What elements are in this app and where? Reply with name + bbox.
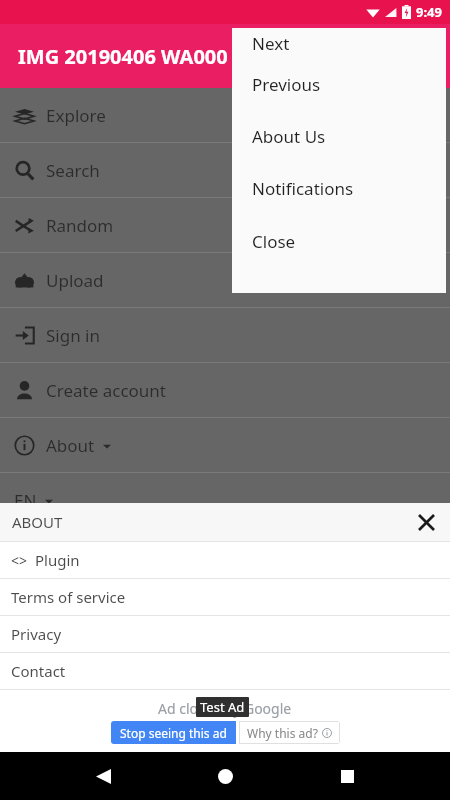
staticText: Why this ad? bbox=[247, 725, 318, 741]
staticText: Explore bbox=[46, 104, 106, 127]
button[interactable]: Upload bbox=[0, 253, 450, 307]
button[interactable]: Terms of service bbox=[0, 579, 450, 615]
staticText: Contact bbox=[11, 661, 66, 681]
button[interactable]: Why this ad? bbox=[239, 721, 340, 744]
staticText: Terms of service bbox=[11, 587, 126, 607]
staticText: Next bbox=[252, 32, 290, 55]
staticText: <> bbox=[11, 551, 28, 570]
staticText: Search bbox=[46, 159, 100, 182]
staticText: Sign in bbox=[46, 324, 100, 347]
staticText: Ad closed by Google bbox=[158, 699, 292, 718]
staticText: Notifications bbox=[252, 177, 354, 200]
staticText: IMG 20190406 WA000 bbox=[18, 43, 228, 70]
button[interactable]: Next bbox=[232, 28, 446, 58]
staticText: Previous bbox=[252, 73, 321, 96]
staticText: EN bbox=[14, 489, 37, 512]
button[interactable]: <> bbox=[0, 542, 450, 578]
staticText: ABOUT bbox=[12, 512, 63, 532]
button[interactable]: About Us bbox=[232, 110, 446, 162]
staticText: Privacy bbox=[11, 624, 62, 644]
button[interactable]: Sign in bbox=[0, 308, 450, 362]
staticText: Create account bbox=[46, 379, 166, 402]
staticText: Test Ad bbox=[200, 698, 245, 716]
staticText: Random bbox=[46, 214, 114, 237]
staticText: About Us bbox=[252, 125, 326, 148]
button[interactable]: Create account bbox=[0, 363, 450, 417]
button[interactable]: Close bbox=[410, 506, 442, 538]
button[interactable]: Contact bbox=[0, 653, 450, 689]
button[interactable]: Explore bbox=[0, 88, 450, 142]
button[interactable]: Search bbox=[0, 143, 450, 197]
button[interactable]: Home bbox=[205, 756, 245, 796]
button[interactable]: About bbox=[0, 418, 450, 472]
button[interactable]: Privacy bbox=[0, 616, 450, 652]
button[interactable]: Back bbox=[83, 756, 123, 796]
staticText: Stop seeing this ad bbox=[120, 725, 227, 741]
staticText: Upload bbox=[46, 269, 104, 292]
staticText: 9:49 bbox=[416, 3, 442, 21]
staticText: Close bbox=[252, 230, 296, 253]
staticText: About bbox=[46, 434, 95, 457]
staticText: Plugin bbox=[35, 550, 80, 570]
button[interactable]: Previous bbox=[232, 58, 446, 110]
button[interactable]: Stop seeing this ad bbox=[111, 721, 236, 744]
button[interactable]: Close bbox=[232, 215, 446, 267]
button[interactable]: Notifications bbox=[232, 162, 446, 215]
button[interactable]: Recents bbox=[327, 756, 367, 796]
button[interactable]: Random bbox=[0, 198, 450, 252]
